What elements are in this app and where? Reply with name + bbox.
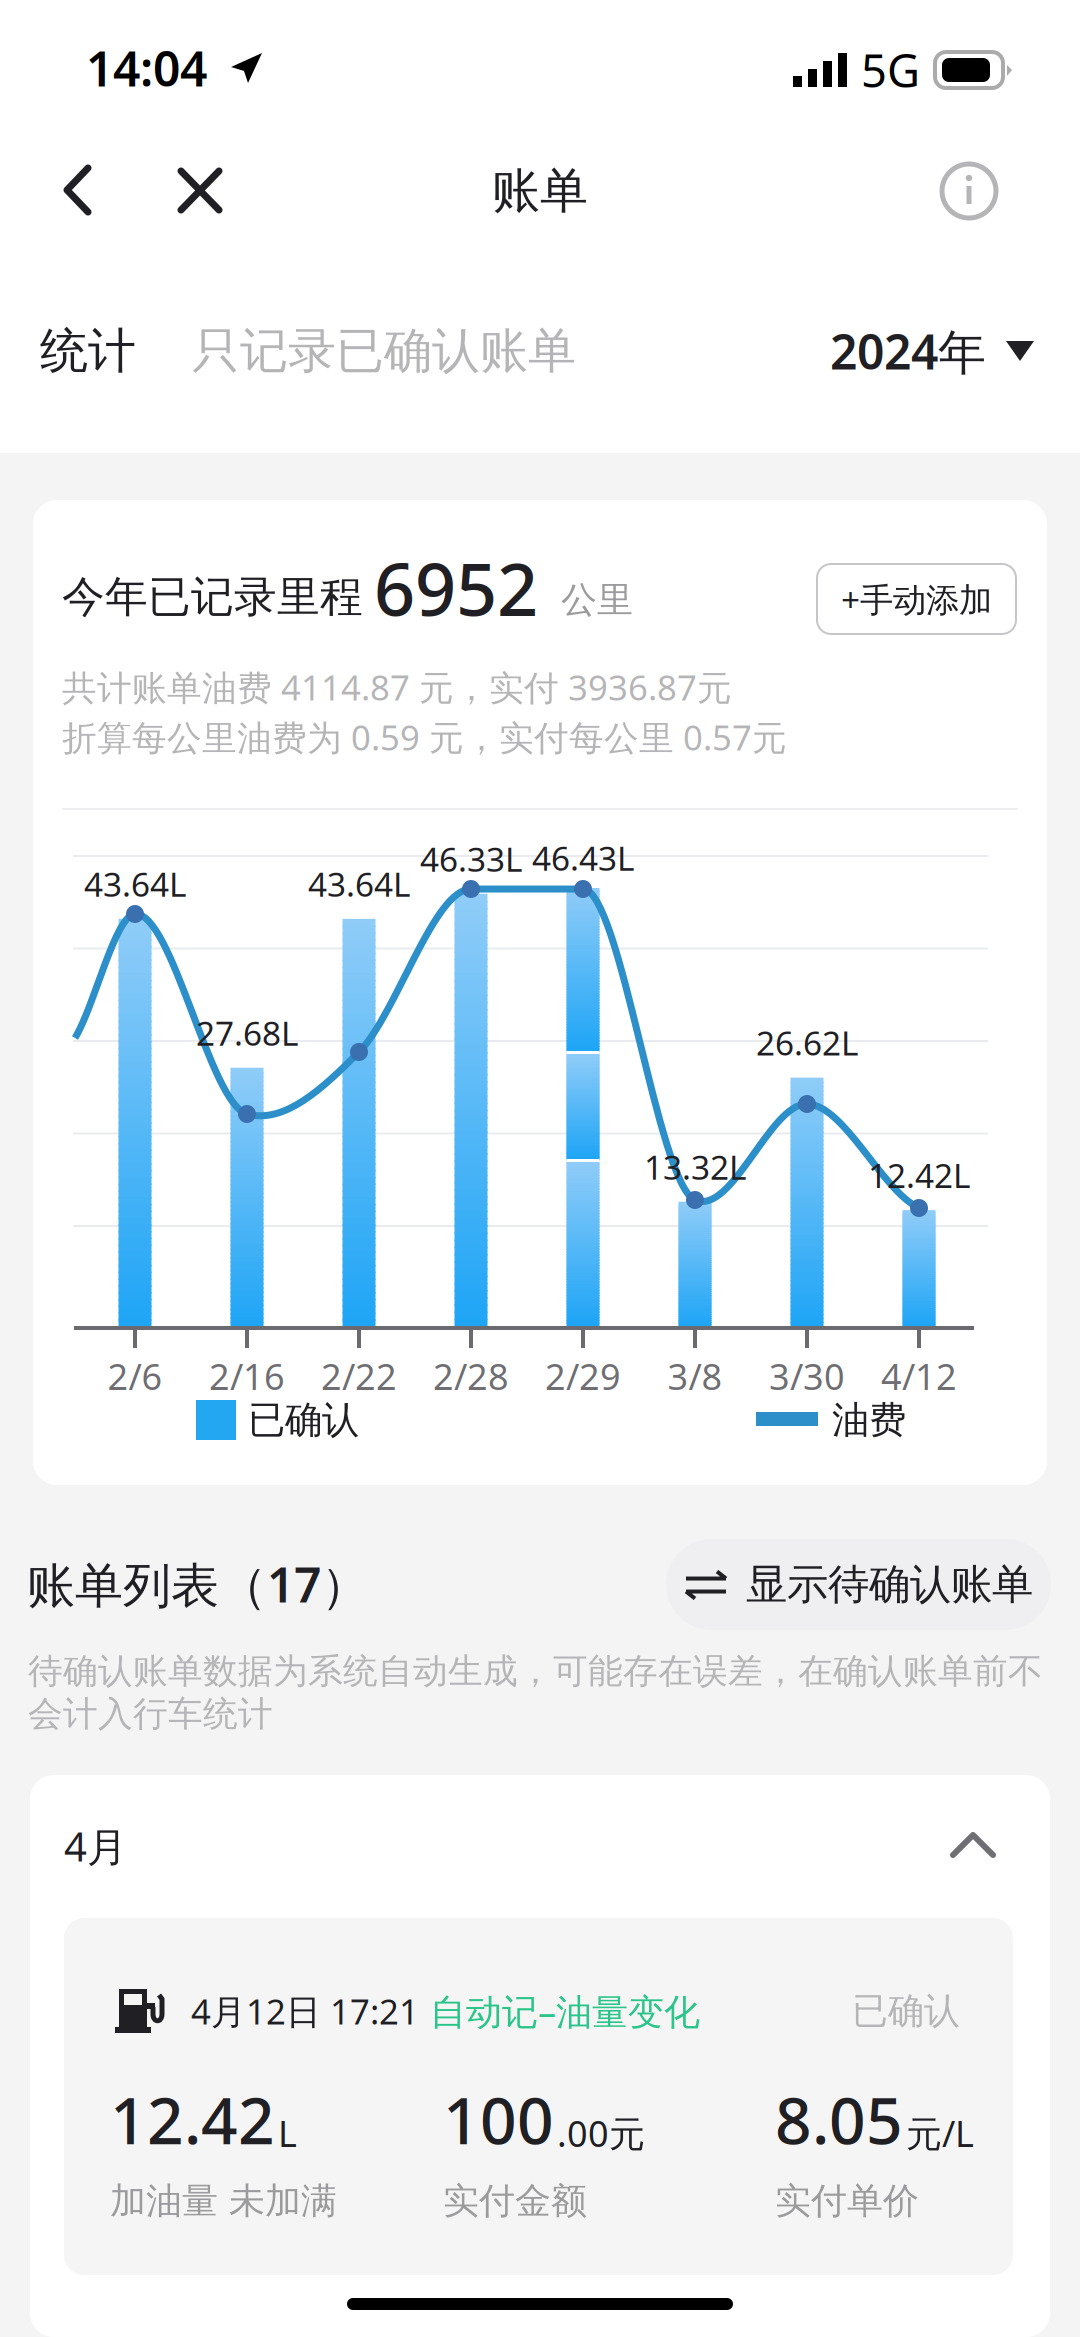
- staticText: 14:04: [86, 36, 207, 100]
- button[interactable]: 2024年: [830, 318, 1035, 384]
- staticText: 8.05: [775, 2077, 903, 2162]
- staticText: 2/22: [321, 1352, 397, 1400]
- button[interactable]: 4月: [64, 1808, 464, 1884]
- staticText: 今年已记录里程: [62, 571, 363, 623]
- staticText: 元/L: [906, 2109, 974, 2157]
- staticText: 13.32L: [644, 1145, 746, 1189]
- staticText: 只记录已确认账单: [192, 321, 576, 380]
- staticText: 4月: [64, 1819, 127, 1872]
- staticText: 油费: [832, 1397, 906, 1443]
- button[interactable]: Information: [919, 143, 1019, 239]
- staticText: 账单: [492, 161, 588, 220]
- staticText: 公里: [561, 578, 633, 622]
- staticText: 显示待确认账单: [746, 1559, 1033, 1610]
- staticText: 实付单价: [775, 2179, 919, 2223]
- button[interactable]: Collapse: [950, 1832, 996, 1858]
- button[interactable]: 统计: [40, 318, 160, 384]
- staticText: 43.64L: [308, 862, 410, 906]
- staticText: 4月12日 17:21: [191, 1988, 419, 2034]
- staticText: +手动添加: [841, 577, 992, 621]
- staticText: 已确认: [248, 1397, 359, 1443]
- staticText: 43.64L: [84, 862, 186, 906]
- staticText: 2024年: [830, 319, 986, 383]
- button[interactable]: 只记录已确认账单: [192, 318, 582, 384]
- staticText: 2/28: [433, 1352, 509, 1400]
- button[interactable]: 显示待确认账单: [666, 1539, 1051, 1630]
- staticText: 2/29: [545, 1352, 621, 1400]
- staticText: 46.43L: [532, 836, 634, 880]
- button[interactable]: Back: [30, 143, 130, 239]
- staticText: 12.42L: [868, 1153, 970, 1197]
- staticText: 12.42: [110, 2077, 275, 2162]
- staticText: .00元: [557, 2109, 645, 2157]
- button[interactable]: Close: [150, 143, 250, 239]
- staticText: 5G: [861, 40, 920, 100]
- staticText: 统计: [40, 321, 136, 380]
- staticText: 自动记–油量变化: [430, 1987, 700, 2035]
- staticText: 实付金额: [443, 2179, 587, 2223]
- staticText: 账单列表（17）: [27, 1552, 369, 1616]
- staticText: L: [278, 2109, 297, 2157]
- staticText: 46.33L: [420, 837, 522, 881]
- staticText: 2/6: [107, 1352, 162, 1400]
- button[interactable]: +手动添加: [817, 564, 1016, 634]
- staticText: 2/16: [209, 1352, 285, 1400]
- staticText: 4/12: [881, 1352, 957, 1400]
- staticText: 折算每公里油费为 0.59 元，实付每公里 0.57元: [62, 714, 787, 760]
- staticText: 100: [443, 2077, 554, 2162]
- staticText: 27.68L: [196, 1011, 298, 1055]
- staticText: 已确认: [852, 1989, 960, 2033]
- staticText: 待确认账单数据为系统自动生成，可能存在误差，在确认账单前不会计入行车统计: [28, 1650, 1043, 1735]
- staticText: 3/30: [769, 1352, 845, 1400]
- staticText: 共计账单油费 4114.87 元，实付 3936.87元: [62, 664, 732, 710]
- staticText: 6952: [374, 540, 538, 636]
- staticText: 3/8: [667, 1352, 722, 1400]
- staticText: 26.62L: [756, 1020, 858, 1065]
- staticText: 加油量 未加满: [110, 2179, 337, 2223]
